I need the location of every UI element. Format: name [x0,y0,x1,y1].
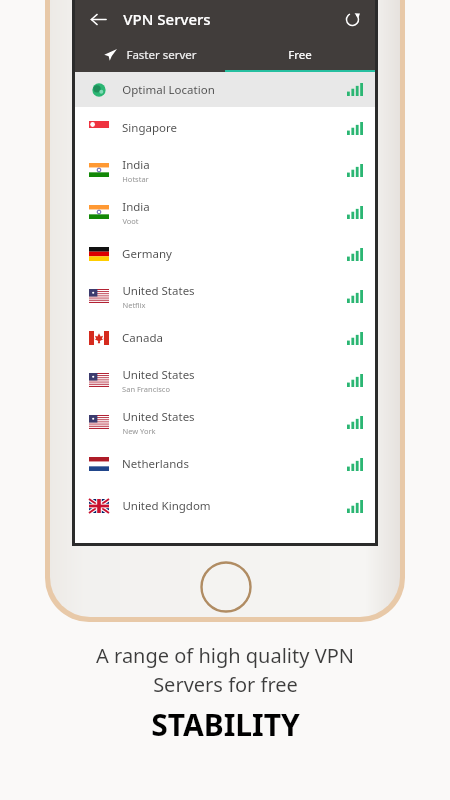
staticText: VPN Servers [123,9,211,29]
button[interactable]: India [75,149,375,191]
staticText: Netflix [122,300,146,310]
staticText: San Francisco [122,384,170,394]
staticText: Germany [122,246,172,262]
staticText: India [122,157,150,173]
staticText: Singapore [122,120,177,136]
staticText: Canada [122,330,163,346]
staticText: Voot [122,216,139,226]
staticText: Free [288,47,312,63]
staticText: New York [122,426,156,436]
staticText: Optimal Location [122,82,215,98]
staticText: Faster server [126,47,197,63]
staticText: United States [122,283,195,299]
button[interactable]: Canada [75,317,375,359]
staticText: Servers for free [153,671,298,698]
button[interactable]: United Kingdom [75,485,375,527]
staticText: India [122,199,150,215]
button[interactable]: Optimal Location [75,72,375,107]
staticText: Netherlands [122,456,189,472]
button[interactable]: Faster server [75,39,225,70]
button[interactable]: United States [75,275,375,317]
staticText: United States [122,367,195,383]
staticText: United Kingdom [122,498,211,514]
button[interactable]: India [75,191,375,233]
staticText: United States [122,409,195,425]
button[interactable]: Singapore [75,107,375,149]
button[interactable]: Netherlands [75,443,375,485]
staticText: Hotstar [122,174,149,184]
button[interactable]: Germany [75,233,375,275]
button[interactable]: Refresh [335,2,369,36]
button[interactable]: Back [81,2,115,36]
button[interactable]: United States [75,401,375,443]
button[interactable]: United States [75,359,375,401]
button[interactable]: Free [225,39,375,70]
staticText: STABILITY [151,704,300,745]
staticText: A range of high quality VPN [96,642,354,669]
